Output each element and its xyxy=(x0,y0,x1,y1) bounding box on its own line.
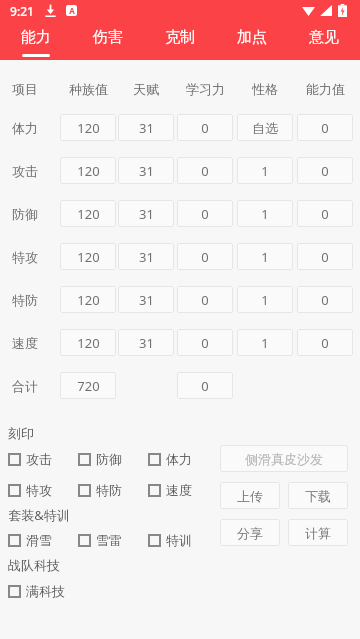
staticText: 雪雷 xyxy=(96,532,122,548)
other: Battery xyxy=(338,4,347,17)
staticText: 0 xyxy=(201,248,209,266)
button[interactable]: 速度 xyxy=(148,479,192,501)
staticText: 战队科技 xyxy=(8,557,60,573)
staticText: 种族值 xyxy=(69,81,108,97)
staticText: 合计 xyxy=(12,378,38,394)
button[interactable]: 31 xyxy=(118,329,174,356)
staticText: 满科技 xyxy=(26,583,65,599)
button[interactable]: 伤害 xyxy=(72,22,144,60)
button[interactable]: 31 xyxy=(118,200,174,227)
button[interactable]: 特攻 xyxy=(8,479,52,501)
staticText: 120 xyxy=(77,334,100,352)
staticText: 0 xyxy=(321,291,329,309)
staticText: 性格 xyxy=(252,81,278,97)
button[interactable]: 0 xyxy=(177,200,233,227)
staticText: 特防 xyxy=(96,482,122,498)
staticText: 自选 xyxy=(252,120,278,136)
button[interactable]: 特训 xyxy=(148,529,192,551)
button[interactable]: 31 xyxy=(118,157,174,184)
button[interactable]: 防御 xyxy=(78,448,122,470)
button[interactable]: 下载 xyxy=(288,482,348,509)
button[interactable]: 攻击 xyxy=(8,448,52,470)
button[interactable]: 0 xyxy=(297,157,353,184)
staticText: 特攻 xyxy=(12,249,38,265)
button[interactable]: 意见 xyxy=(288,22,360,60)
staticText: 120 xyxy=(77,248,100,266)
staticText: 0 xyxy=(201,119,209,137)
button[interactable]: 31 xyxy=(118,243,174,270)
other: Download xyxy=(44,4,57,17)
staticText: 特训 xyxy=(166,532,192,548)
staticText: 计算 xyxy=(305,525,331,541)
button[interactable]: 1 xyxy=(237,157,293,184)
staticText: 120 xyxy=(77,119,100,137)
button[interactable]: 侧滑真皮沙发 xyxy=(220,445,348,472)
button[interactable]: 能力 xyxy=(0,22,72,60)
staticText: 加点 xyxy=(237,28,267,47)
staticText: 120 xyxy=(77,205,100,223)
button[interactable]: 0 xyxy=(297,200,353,227)
staticText: 31 xyxy=(139,119,154,137)
button[interactable]: 0 xyxy=(297,243,353,270)
button[interactable]: 0 xyxy=(297,329,353,356)
button[interactable]: 计算 xyxy=(288,519,348,546)
staticText: 侧滑真皮沙发 xyxy=(245,451,323,467)
staticText: 能力 xyxy=(21,28,51,47)
staticText: 31 xyxy=(139,162,154,180)
staticText: 1 xyxy=(261,291,269,309)
staticText: 1 xyxy=(261,162,269,180)
button[interactable]: 0 xyxy=(177,329,233,356)
staticText: 速度 xyxy=(12,335,38,351)
staticText: 克制 xyxy=(165,28,195,47)
other: Signal xyxy=(320,5,332,16)
staticText: 攻击 xyxy=(26,451,52,467)
button[interactable]: 120 xyxy=(60,157,116,184)
button[interactable]: 体力 xyxy=(148,448,192,470)
button[interactable]: 1 xyxy=(237,329,293,356)
button[interactable]: 31 xyxy=(118,286,174,313)
staticText: 特防 xyxy=(12,292,38,308)
button[interactable]: 雪雷 xyxy=(78,529,122,551)
button[interactable]: 0 xyxy=(297,286,353,313)
button[interactable]: 0 xyxy=(177,114,233,141)
button[interactable]: 自选 xyxy=(237,114,293,141)
staticText: 0 xyxy=(201,291,209,309)
staticText: 体力 xyxy=(166,451,192,467)
button[interactable]: 特防 xyxy=(78,479,122,501)
staticText: 720 xyxy=(77,377,100,395)
button[interactable]: 0 xyxy=(297,114,353,141)
button[interactable]: 1 xyxy=(237,286,293,313)
staticText: 31 xyxy=(139,205,154,223)
button[interactable]: 0 xyxy=(177,243,233,270)
staticText: 下载 xyxy=(305,488,331,504)
button[interactable]: 0 xyxy=(177,157,233,184)
staticText: 31 xyxy=(139,248,154,266)
staticText: 120 xyxy=(77,291,100,309)
button[interactable]: 31 xyxy=(118,114,174,141)
button[interactable]: 0 xyxy=(177,286,233,313)
button[interactable]: 满科技 xyxy=(8,580,65,602)
staticText: 0 xyxy=(321,205,329,223)
staticText: 1 xyxy=(261,334,269,352)
staticText: 滑雪 xyxy=(26,532,52,548)
staticText: 0 xyxy=(201,162,209,180)
staticText: 1 xyxy=(261,205,269,223)
staticText: 9:21 xyxy=(10,3,34,19)
button[interactable]: 120 xyxy=(60,286,116,313)
button[interactable]: 滑雪 xyxy=(8,529,52,551)
button[interactable]: 120 xyxy=(60,329,116,356)
button[interactable]: 分享 xyxy=(220,519,280,546)
staticText: 0 xyxy=(201,205,209,223)
button[interactable]: 1 xyxy=(237,243,293,270)
staticText: 0 xyxy=(321,248,329,266)
button[interactable]: 120 xyxy=(60,243,116,270)
button[interactable]: 720 xyxy=(60,372,116,399)
button[interactable]: 克制 xyxy=(144,22,216,60)
button[interactable]: 加点 xyxy=(216,22,288,60)
button[interactable]: 上传 xyxy=(220,482,280,509)
other: WiFi xyxy=(302,5,315,16)
button[interactable]: 1 xyxy=(237,200,293,227)
button[interactable]: 120 xyxy=(60,200,116,227)
button[interactable]: 0 xyxy=(177,372,233,399)
button[interactable]: 120 xyxy=(60,114,116,141)
